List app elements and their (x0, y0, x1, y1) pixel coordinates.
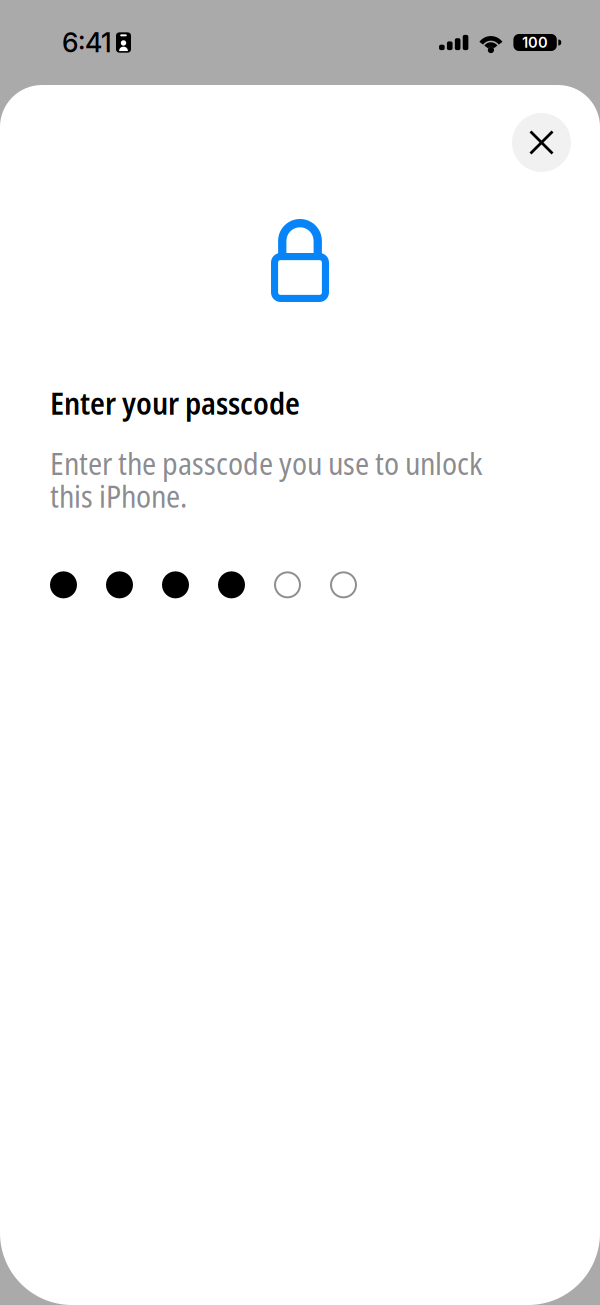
button[interactable]: Close (512, 113, 571, 172)
staticText: 6:41 (62, 26, 112, 59)
staticText: Enter the passcode you use to unlock thi… (50, 447, 482, 512)
staticText: Enter your passcode (50, 382, 300, 424)
staticText: 100 (522, 34, 548, 51)
